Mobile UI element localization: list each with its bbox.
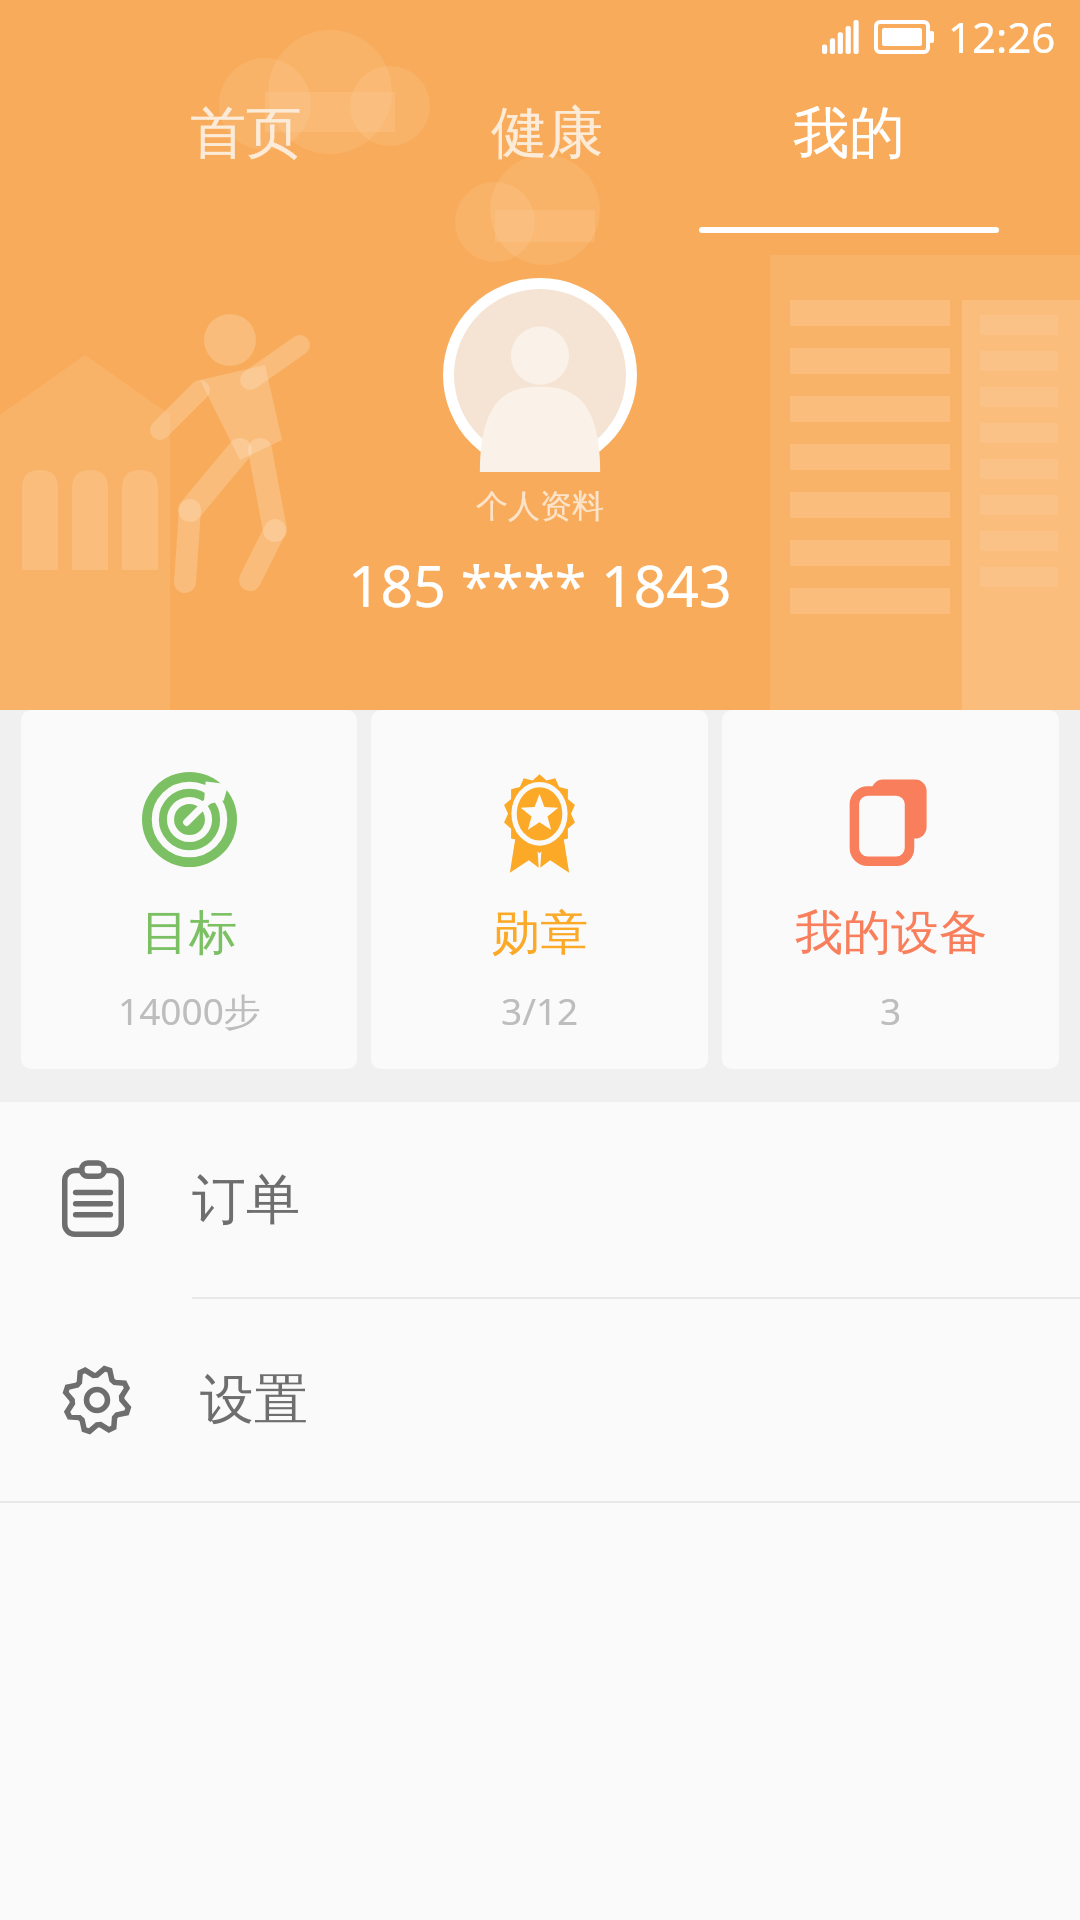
- staticText: 勋章: [492, 903, 588, 963]
- staticText: 个人资料: [476, 486, 604, 526]
- staticText: 14000步: [118, 985, 261, 1036]
- button[interactable]: 勋章: [371, 710, 708, 1069]
- button[interactable]: 首页: [95, 92, 396, 233]
- staticText: 我的: [793, 98, 905, 169]
- button[interactable]: 健康: [396, 92, 698, 233]
- button[interactable]: Settings: [0, 1299, 1080, 1501]
- button[interactable]: 我的设备: [722, 710, 1059, 1069]
- button[interactable]: Profile photo: [443, 278, 637, 472]
- staticText: 首页: [190, 98, 302, 169]
- other: Settings: [62, 1365, 132, 1435]
- staticText: 健康: [491, 98, 603, 169]
- staticText: 12:26: [948, 8, 1056, 65]
- staticText: 我的设备: [795, 903, 987, 963]
- button[interactable]: 我的: [698, 92, 1000, 239]
- staticText: 设置: [200, 1366, 308, 1434]
- button[interactable]: 目标: [21, 710, 357, 1069]
- staticText: 订单: [192, 1166, 300, 1234]
- staticText: 目标: [141, 903, 237, 963]
- button[interactable]: Orders: [0, 1102, 1080, 1297]
- other: Orders: [62, 1163, 124, 1237]
- staticText: 3: [880, 985, 902, 1035]
- staticText: 3/12: [501, 985, 579, 1035]
- staticText: 185 **** 1843: [348, 546, 732, 624]
